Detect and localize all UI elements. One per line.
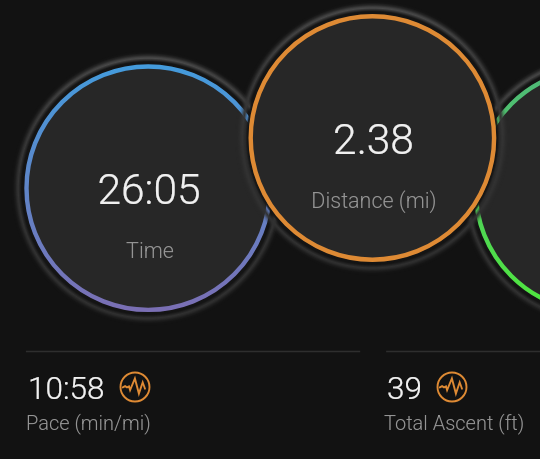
staticText: Pace (min/mi) xyxy=(26,411,151,434)
other: Activity details xyxy=(119,371,151,403)
button[interactable]: Metric dial xyxy=(25,65,272,312)
button[interactable]: Metric dial xyxy=(249,14,496,261)
other: Activity details xyxy=(436,371,468,403)
button[interactable] xyxy=(26,360,360,438)
button[interactable] xyxy=(386,360,540,438)
button[interactable]: Metric dial xyxy=(474,66,540,313)
staticText: 26:05 xyxy=(97,165,201,215)
staticText: Time xyxy=(126,238,174,263)
staticText: Distance (mi) xyxy=(311,188,437,213)
staticText: Total Ascent (ft) xyxy=(384,411,525,434)
staticText: 2.38 xyxy=(333,115,414,165)
staticText: 10:58 xyxy=(28,370,105,407)
staticText: 39 xyxy=(387,370,422,407)
